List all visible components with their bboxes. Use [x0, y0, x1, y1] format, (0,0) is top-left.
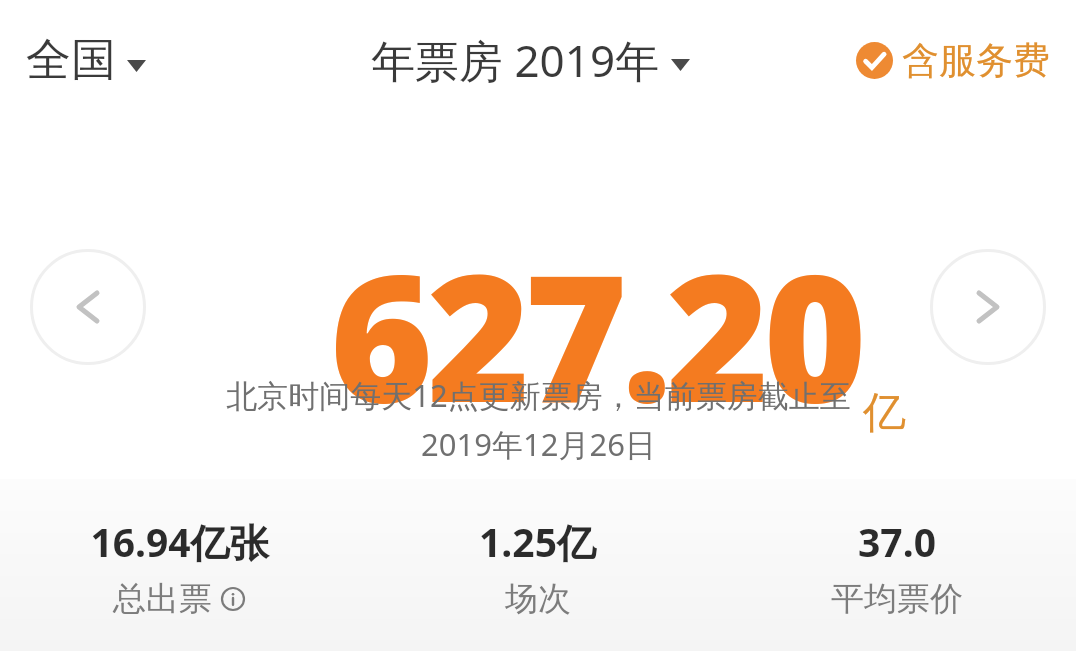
staticText: 北京时间每天12点更新票房，当前票房截止至: [226, 374, 851, 416]
staticText: 平均票价: [831, 578, 963, 620]
button[interactable]: 年票房 2019年: [365, 24, 696, 96]
staticText: 全国: [26, 32, 116, 89]
button[interactable]: 37.0: [717, 483, 1076, 651]
staticText: 37.0: [858, 515, 936, 568]
staticText: 含服务费: [902, 37, 1050, 84]
staticText: 年票房 2019年: [371, 30, 660, 90]
button[interactable]: Previous period: [30, 249, 146, 365]
button[interactable]: 含服务费: [852, 33, 1054, 88]
staticText: 627.20: [330, 214, 861, 454]
staticText: 1.25亿: [479, 515, 596, 568]
button[interactable]: 16.94亿张: [0, 483, 358, 651]
staticText: 16.94亿张: [90, 515, 269, 568]
button[interactable]: 全国: [20, 26, 152, 95]
staticText: 场次: [505, 578, 571, 620]
button[interactable]: 1.25亿: [358, 483, 717, 651]
staticText: 总出票: [113, 578, 212, 620]
button[interactable]: Next period: [930, 249, 1046, 365]
staticText: 2019年12月26日: [421, 423, 656, 465]
staticText: 亿: [863, 386, 906, 440]
